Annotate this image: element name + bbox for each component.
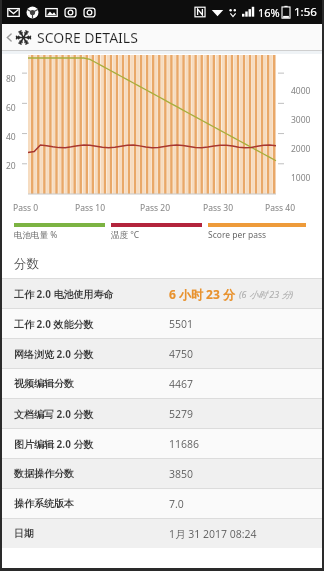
staticText: 视频编辑分数: [14, 377, 169, 390]
staticText: 6 小时 23 分: [169, 286, 235, 302]
staticText: 1:56: [294, 4, 317, 20]
staticText: 7.0: [169, 497, 184, 511]
staticText: 1000: [291, 172, 311, 184]
staticText: 电池电量 %: [14, 229, 58, 241]
staticText: 操作系统版本: [14, 497, 169, 510]
button[interactable]: Back: [2, 24, 16, 50]
button[interactable]: 工作 2.0 效能分数: [2, 309, 322, 338]
staticText: 5279: [169, 407, 194, 421]
staticText: 文档编写 2.0 分数: [14, 407, 169, 421]
staticText: 工作 2.0 电池使用寿命: [14, 287, 169, 301]
staticText: 分数: [14, 256, 39, 272]
button[interactable]: 文档编写 2.0 分数: [2, 399, 322, 428]
button[interactable]: 数据操作分数: [2, 459, 322, 488]
staticText: 11686: [169, 437, 200, 451]
staticText: 3000: [291, 114, 311, 126]
staticText: Pass 30: [203, 202, 233, 214]
staticText: Pass 0: [13, 202, 39, 214]
staticText: 16%: [258, 5, 280, 20]
staticText: 40: [6, 131, 16, 143]
button[interactable]: 图片编辑 2.0 分数: [2, 429, 322, 458]
staticText: 网络浏览 2.0 分数: [14, 347, 169, 361]
staticText: Pass 40: [265, 202, 295, 214]
staticText: 5501: [169, 317, 194, 331]
staticText: 4467: [169, 377, 194, 391]
staticText: 温度 °C: [111, 229, 140, 241]
button[interactable]: 工作 2.0 电池使用寿命: [2, 279, 322, 308]
staticText: 4000: [291, 85, 311, 97]
staticText: 60: [6, 102, 16, 114]
staticText: Pass 20: [140, 202, 170, 214]
staticText: 3850: [169, 467, 194, 481]
staticText: 1月 31 2017 08:24: [169, 527, 257, 541]
staticText: Score per pass: [208, 229, 267, 241]
button[interactable]: 日期: [2, 519, 322, 548]
staticText: 4750: [169, 347, 194, 361]
button[interactable]: 操作系统版本: [2, 489, 322, 518]
staticText: SCORE DETAILS: [37, 28, 138, 47]
staticText: 日期: [14, 527, 169, 540]
staticText: 2000: [291, 143, 311, 155]
staticText: Pass 10: [75, 202, 105, 214]
staticText: (6 小时 23 分): [239, 288, 294, 300]
staticText: 20: [6, 160, 16, 172]
staticText: 图片编辑 2.0 分数: [14, 437, 169, 451]
button[interactable]: 网络浏览 2.0 分数: [2, 339, 322, 368]
staticText: 工作 2.0 效能分数: [14, 317, 169, 331]
staticText: 80: [6, 73, 16, 85]
staticText: 数据操作分数: [14, 467, 169, 480]
button[interactable]: 视频编辑分数: [2, 369, 322, 398]
